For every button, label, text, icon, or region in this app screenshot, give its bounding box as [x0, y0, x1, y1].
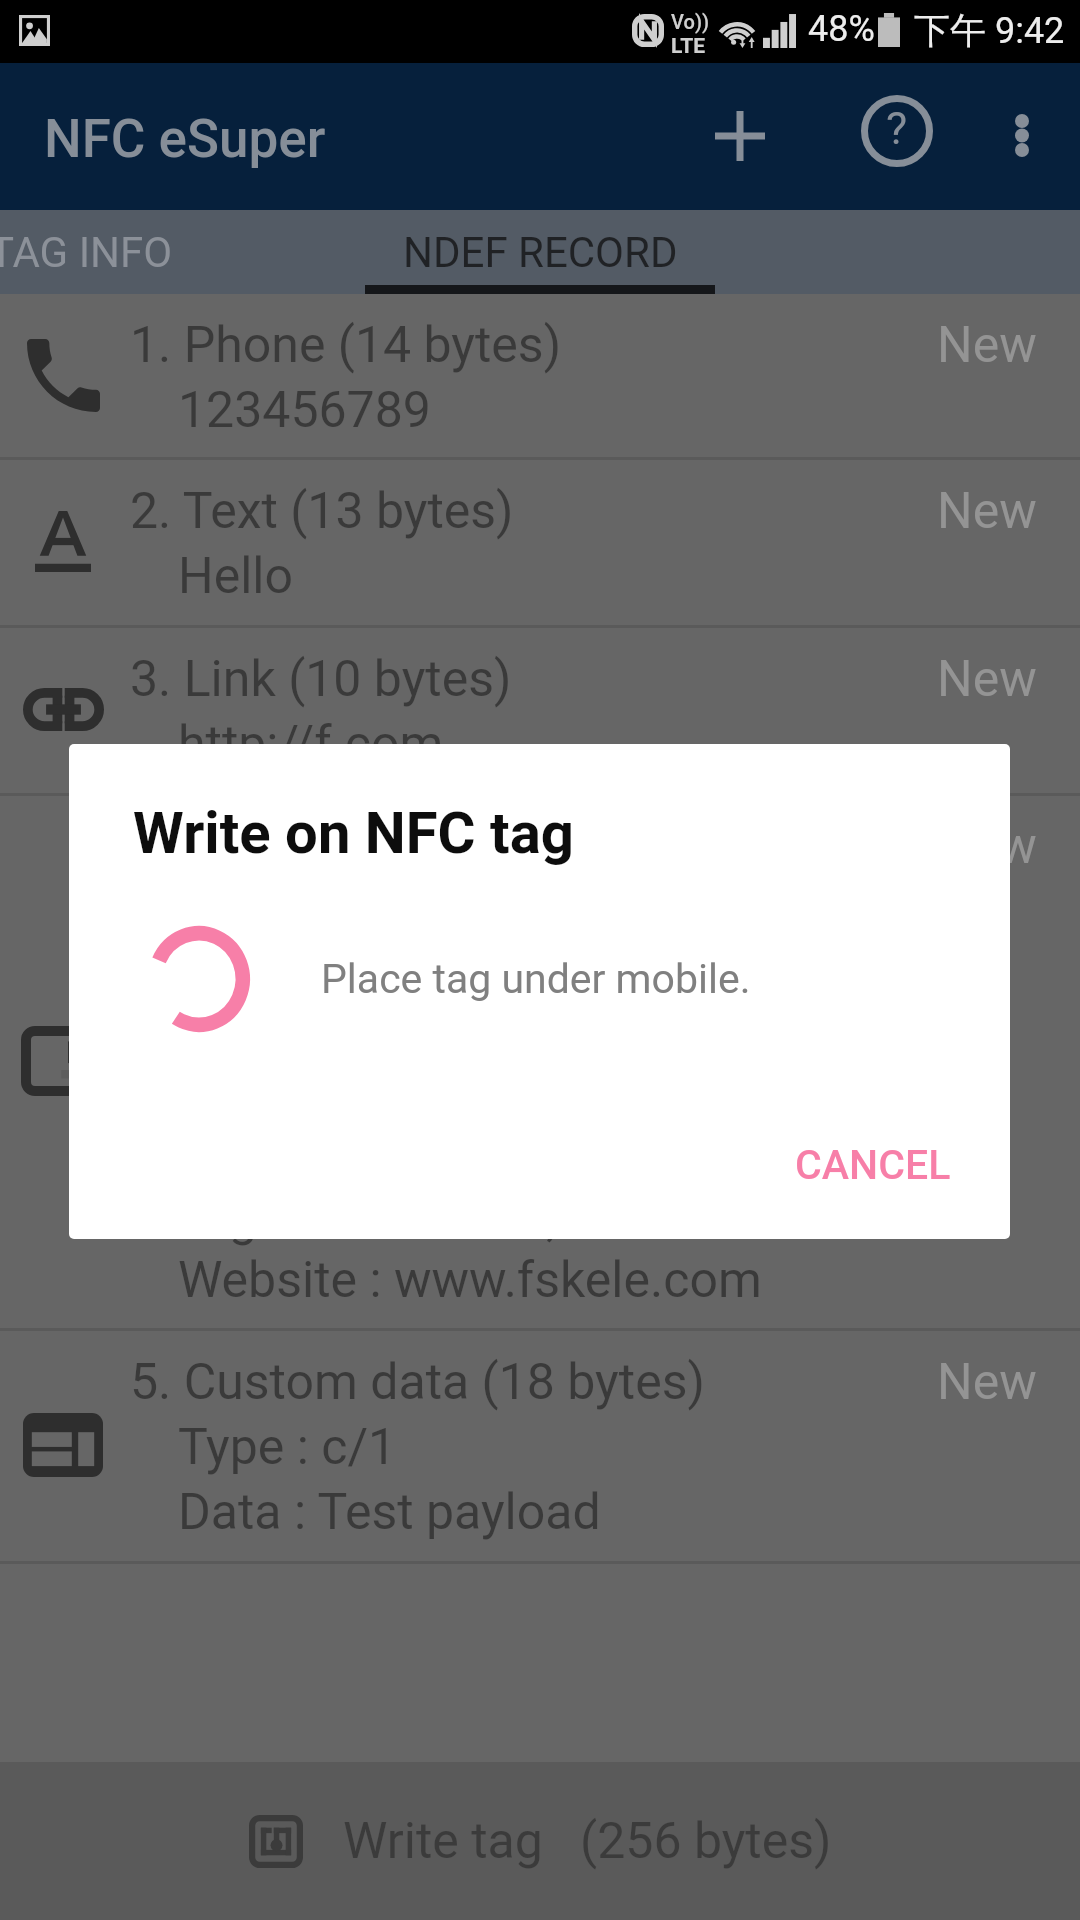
staticText: New — [937, 817, 1037, 876]
staticText: LTE — [671, 34, 706, 59]
button[interactable]: Write tag (256 bytes) — [0, 1762, 1080, 1920]
staticText: Name : Eric Chen — [178, 879, 559, 938]
staticText: Mobile : 0912345678 — [178, 1003, 647, 1062]
button[interactable]: New — [894, 313, 1080, 378]
button[interactable]: 2. Text (13 bytes) — [0, 460, 1080, 625]
staticText: ? — [886, 102, 908, 155]
button[interactable]: 1. Phone (14 bytes) — [0, 294, 1080, 457]
staticText: NFC eSuper — [44, 108, 326, 170]
button[interactable]: Add record — [675, 63, 805, 210]
staticText: Vo)) — [671, 10, 710, 33]
staticText: TAG INFO — [0, 228, 173, 277]
staticText: CANCEL — [795, 1141, 951, 1189]
staticText: Hello — [178, 547, 294, 606]
button[interactable]: New — [894, 647, 1080, 712]
staticText: NDEF RECORD — [403, 228, 678, 277]
button[interactable]: More options — [963, 63, 1080, 210]
staticText: 下午 9:42 — [914, 8, 1065, 53]
button[interactable]: 4. Contact (73 bytes) — [0, 796, 1080, 1328]
staticText: http://f.com — [178, 715, 444, 774]
staticText: Type : c/1 — [178, 1418, 397, 1477]
staticText: 5. Custom data (18 bytes) — [130, 1353, 705, 1412]
staticText: 1. Phone (14 bytes) — [130, 316, 562, 375]
button[interactable]: New — [894, 1350, 1080, 1415]
staticText: New — [937, 482, 1037, 541]
button[interactable]: CANCEL — [763, 1117, 983, 1213]
staticText: New — [937, 650, 1037, 709]
button[interactable]: Help — [833, 63, 961, 210]
staticText: New — [937, 316, 1037, 375]
button[interactable]: New — [894, 815, 1080, 877]
staticText: Data : Test payload — [178, 1483, 601, 1542]
staticText: Org : FS Kele Co., Ltd. — [178, 1189, 654, 1248]
staticText: 2. Text (13 bytes) — [130, 482, 514, 541]
staticText: 3. Link (10 bytes) — [130, 650, 512, 709]
button[interactable]: TAG INFO — [0, 210, 173, 294]
staticText: New — [937, 1353, 1037, 1412]
staticText: Place tag under mobile. — [321, 955, 751, 1003]
staticText: 123456789 — [178, 381, 431, 440]
button[interactable]: 5. Custom data (18 bytes) — [0, 1331, 1080, 1561]
staticText: Tel : 0912345678 — [178, 941, 563, 1000]
staticText: Write tag (256 bytes) — [343, 1812, 832, 1871]
button[interactable]: New — [894, 479, 1080, 544]
staticText: Website : www.fskele.com — [178, 1251, 762, 1310]
staticText: 4. Contact (73 bytes) — [130, 817, 595, 876]
staticText: 48% — [808, 8, 875, 50]
button[interactable]: 3. Link (10 bytes) — [0, 628, 1080, 793]
staticText: Write on NFC tag — [133, 799, 574, 867]
button[interactable]: NDEF RECORD — [365, 210, 715, 294]
